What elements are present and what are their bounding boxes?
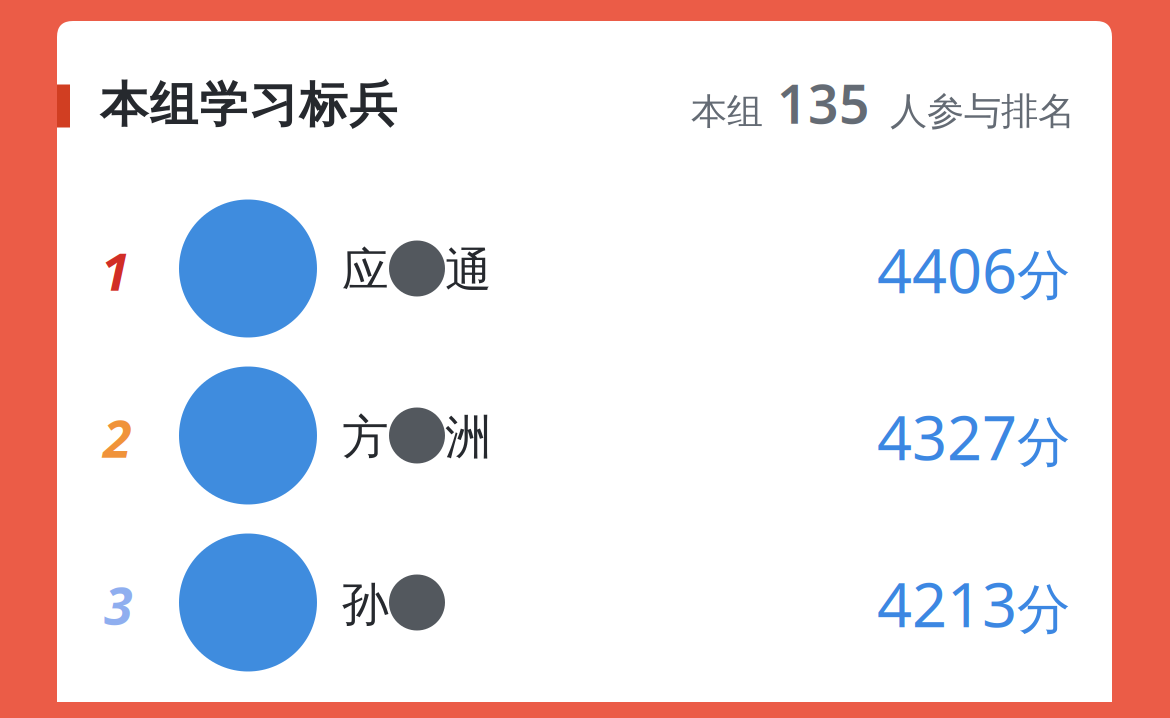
staticText: 4327	[877, 396, 1017, 477]
staticText: 孙	[342, 576, 389, 633]
staticText: 应	[342, 242, 389, 299]
staticText: 135	[777, 68, 870, 138]
staticText: 分	[1017, 577, 1070, 642]
staticText: 3	[104, 570, 133, 639]
button[interactable]: 3	[57, 519, 1112, 686]
staticText: 4213	[877, 563, 1017, 644]
staticText: 方	[342, 409, 389, 466]
staticText: 2	[103, 403, 132, 472]
staticText: 分	[1017, 243, 1070, 308]
button[interactable]: 2	[57, 352, 1112, 519]
staticText: 洲	[445, 409, 492, 466]
staticText: 4406	[877, 229, 1017, 310]
staticText: 本组	[691, 90, 763, 134]
staticText: 分	[1017, 410, 1070, 475]
staticText: 1	[101, 236, 130, 305]
staticText: 通	[445, 242, 492, 299]
staticText: 人参与排名	[890, 88, 1075, 134]
staticText: 本组学习标兵	[100, 75, 397, 134]
button[interactable]: 1	[57, 185, 1112, 352]
